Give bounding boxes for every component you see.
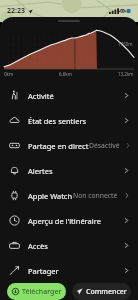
staticText: Accès [28, 241, 48, 251]
other: Open [123, 92, 130, 99]
other: Open [124, 192, 130, 199]
staticText: Aperçu de l'itinéraire [28, 216, 101, 226]
button[interactable]: Partage en direct [0, 133, 138, 158]
staticText: Apple Watch [28, 191, 73, 201]
staticText: Télécharger [22, 287, 62, 297]
staticText: Non connecté [73, 191, 118, 200]
staticText: Désactivé [89, 141, 120, 150]
staticText: État des sentiers [28, 116, 87, 126]
other: Open [123, 167, 130, 174]
other: Open [123, 242, 130, 249]
button[interactable]: Apple Watch [0, 183, 138, 208]
staticText: Activité [28, 91, 54, 101]
button[interactable]: Partager [0, 258, 138, 283]
staticText: Partage en direct [28, 141, 89, 151]
button[interactable]: Télécharger [7, 283, 66, 300]
staticText: Partager [28, 266, 59, 276]
staticText: Alertes [28, 166, 53, 176]
button[interactable]: Alertes [0, 158, 138, 183]
button[interactable]: Accès [0, 233, 138, 258]
other: Open [123, 217, 130, 224]
staticText: 6,6km [59, 71, 72, 77]
staticText: Commencer [86, 287, 127, 297]
staticText: 1760m [118, 41, 133, 47]
button[interactable]: Aperçu de l'itinéraire [0, 208, 138, 233]
staticText: 13,2km [118, 71, 134, 77]
other: Open [126, 142, 130, 149]
staticText: 22:23 [7, 6, 25, 16]
other: Open [123, 267, 130, 274]
staticText: 0km [4, 71, 14, 77]
button[interactable]: État des sentiers [0, 108, 138, 133]
button[interactable]: Activité [0, 83, 138, 108]
button[interactable]: Commencer [72, 283, 131, 300]
other: Open [123, 117, 130, 124]
